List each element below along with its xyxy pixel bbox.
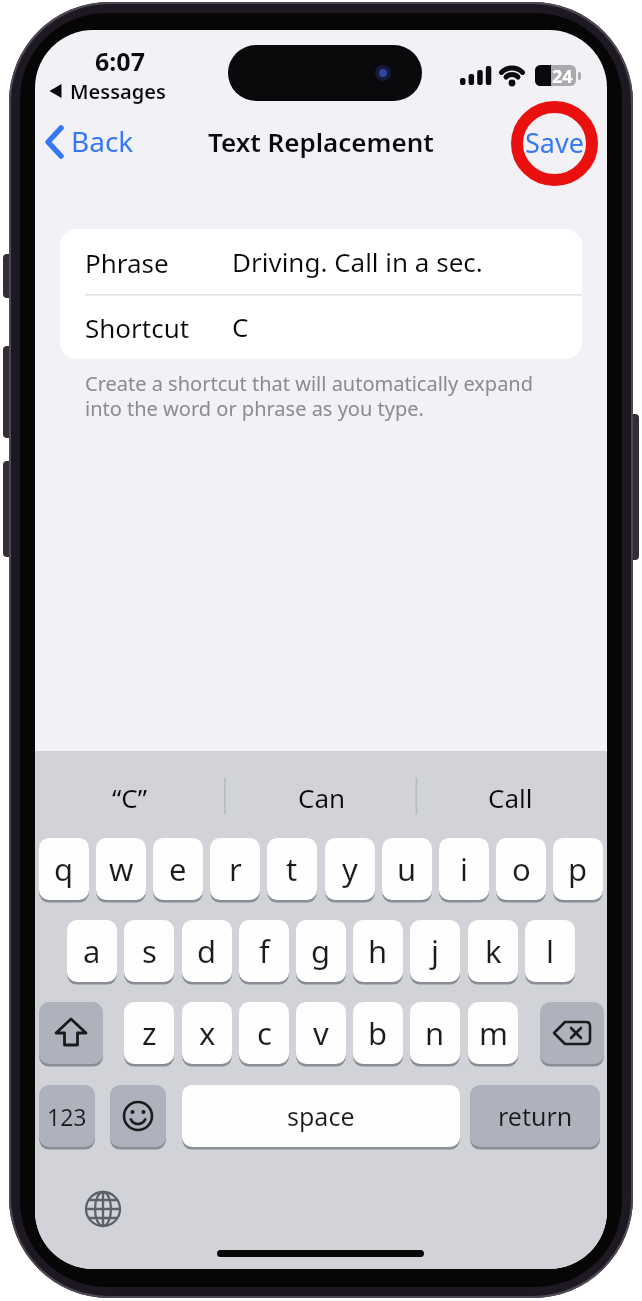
staticText: e xyxy=(169,848,187,890)
button[interactable]: “C” xyxy=(55,775,205,819)
staticText: y xyxy=(342,848,358,890)
staticText: Phrase xyxy=(85,245,169,280)
button[interactable]: k xyxy=(468,920,518,982)
staticText: l xyxy=(546,930,554,972)
button[interactable]: n xyxy=(410,1002,460,1064)
button[interactable]: w xyxy=(96,838,146,900)
button[interactable] xyxy=(540,1002,604,1064)
staticText: Back xyxy=(71,122,134,160)
staticText: into the word or phrase as you type. xyxy=(85,395,424,422)
button[interactable]: Save xyxy=(509,120,599,164)
button[interactable]: Back xyxy=(71,119,181,163)
button[interactable] xyxy=(79,1185,127,1233)
button[interactable]: q xyxy=(39,838,89,900)
staticText: u xyxy=(397,848,417,890)
staticText: space xyxy=(287,1099,355,1133)
button[interactable]: m xyxy=(468,1002,518,1064)
button[interactable]: 123 xyxy=(39,1085,95,1147)
staticText: Driving. Call in a sec. xyxy=(232,244,483,279)
staticText: k xyxy=(485,930,502,972)
staticText: h xyxy=(368,930,388,972)
button[interactable]: Call xyxy=(435,775,585,819)
button[interactable]: b xyxy=(353,1002,403,1064)
button[interactable]: y xyxy=(325,838,375,900)
staticText: z xyxy=(142,1012,157,1054)
staticText: t xyxy=(286,848,298,890)
button[interactable]: u xyxy=(382,838,432,900)
staticText: return xyxy=(498,1099,573,1133)
staticText: a xyxy=(83,930,101,972)
button[interactable]: x xyxy=(182,1002,232,1064)
staticText: “C” xyxy=(112,780,148,815)
staticText: o xyxy=(512,848,531,890)
button[interactable] xyxy=(39,1002,103,1064)
button[interactable]: v xyxy=(296,1002,346,1064)
staticText: Call xyxy=(488,780,533,815)
staticText: 24 xyxy=(552,64,573,89)
button[interactable]: a xyxy=(67,920,117,982)
staticText: j xyxy=(431,930,439,972)
staticText: w xyxy=(109,848,134,890)
staticText: Can xyxy=(298,780,346,815)
button[interactable]: p xyxy=(553,838,603,900)
staticText: 6:07 xyxy=(95,44,145,78)
staticText: g xyxy=(311,930,331,972)
staticText: n xyxy=(425,1012,445,1054)
button[interactable]: g xyxy=(296,920,346,982)
button[interactable]: l xyxy=(525,920,575,982)
staticText: f xyxy=(259,930,270,972)
button[interactable]: j xyxy=(410,920,460,982)
staticText: x xyxy=(199,1012,216,1054)
button[interactable]: e xyxy=(153,838,203,900)
button[interactable]: o xyxy=(496,838,546,900)
staticText: r xyxy=(229,848,242,890)
staticText: m xyxy=(479,1012,508,1054)
staticText: c xyxy=(257,1012,272,1054)
button[interactable]: c xyxy=(239,1002,289,1064)
staticText: q xyxy=(54,848,74,890)
staticText: b xyxy=(368,1012,388,1054)
button[interactable] xyxy=(110,1085,166,1147)
staticText: Shortcut xyxy=(85,310,190,345)
staticText: Create a shortcut that will automaticall… xyxy=(85,370,534,397)
staticText: C xyxy=(232,309,249,344)
button[interactable] xyxy=(60,229,582,294)
button[interactable]: Can xyxy=(247,775,397,819)
button[interactable]: z xyxy=(124,1002,174,1064)
button[interactable] xyxy=(60,294,582,359)
staticText: Messages xyxy=(70,78,166,105)
staticText: 123 xyxy=(47,1101,87,1132)
button[interactable]: i xyxy=(439,838,489,900)
button[interactable]: space xyxy=(182,1085,460,1147)
button[interactable]: s xyxy=(124,920,174,982)
staticText: i xyxy=(460,848,468,890)
staticText: Text Replacement xyxy=(208,124,434,159)
button[interactable]: h xyxy=(353,920,403,982)
button[interactable]: f xyxy=(239,920,289,982)
staticText: Save xyxy=(525,124,584,161)
staticText: v xyxy=(313,1012,329,1054)
staticText: p xyxy=(568,848,588,890)
button[interactable]: d xyxy=(182,920,232,982)
button[interactable]: return xyxy=(470,1085,600,1147)
button[interactable]: r xyxy=(210,838,260,900)
button[interactable]: t xyxy=(267,838,317,900)
staticText: s xyxy=(142,930,157,972)
staticText: d xyxy=(197,930,217,972)
